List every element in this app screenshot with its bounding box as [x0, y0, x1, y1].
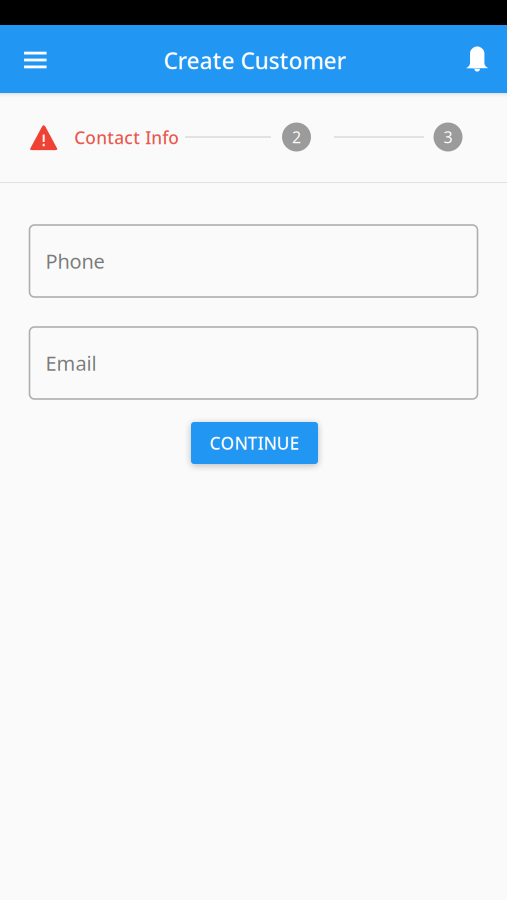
staticText: 3: [443, 126, 452, 148]
button[interactable]: Step 3: [433, 122, 462, 151]
button[interactable]: Step 2: [282, 122, 311, 151]
staticText: Email: [45, 350, 96, 376]
button[interactable]: Email: [29, 327, 477, 399]
button[interactable]: Phone: [29, 225, 477, 297]
button[interactable]: Contact Info: [29, 115, 179, 159]
button[interactable]: Menu: [10, 35, 60, 85]
button[interactable]: CONTINUE: [191, 422, 318, 464]
button[interactable]: Notifications: [454, 34, 500, 84]
staticText: Create Customer: [163, 45, 346, 75]
staticText: CONTINUE: [209, 431, 299, 454]
staticText: Contact Info: [74, 126, 179, 149]
staticText: 2: [292, 126, 301, 148]
staticText: Phone: [45, 248, 104, 274]
